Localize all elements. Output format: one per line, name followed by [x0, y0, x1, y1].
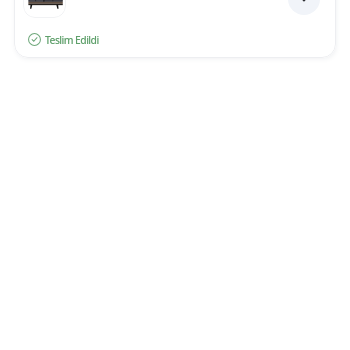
button[interactable]: Teslim Edildi	[28, 33, 99, 46]
staticText: Teslim Edildi	[45, 33, 99, 46]
button[interactable]: Ürün görseli	[23, 0, 66, 18]
button[interactable]: Sipariş detayını aç	[288, 0, 320, 15]
button[interactable]: Ürün görseli	[14, 0, 336, 58]
